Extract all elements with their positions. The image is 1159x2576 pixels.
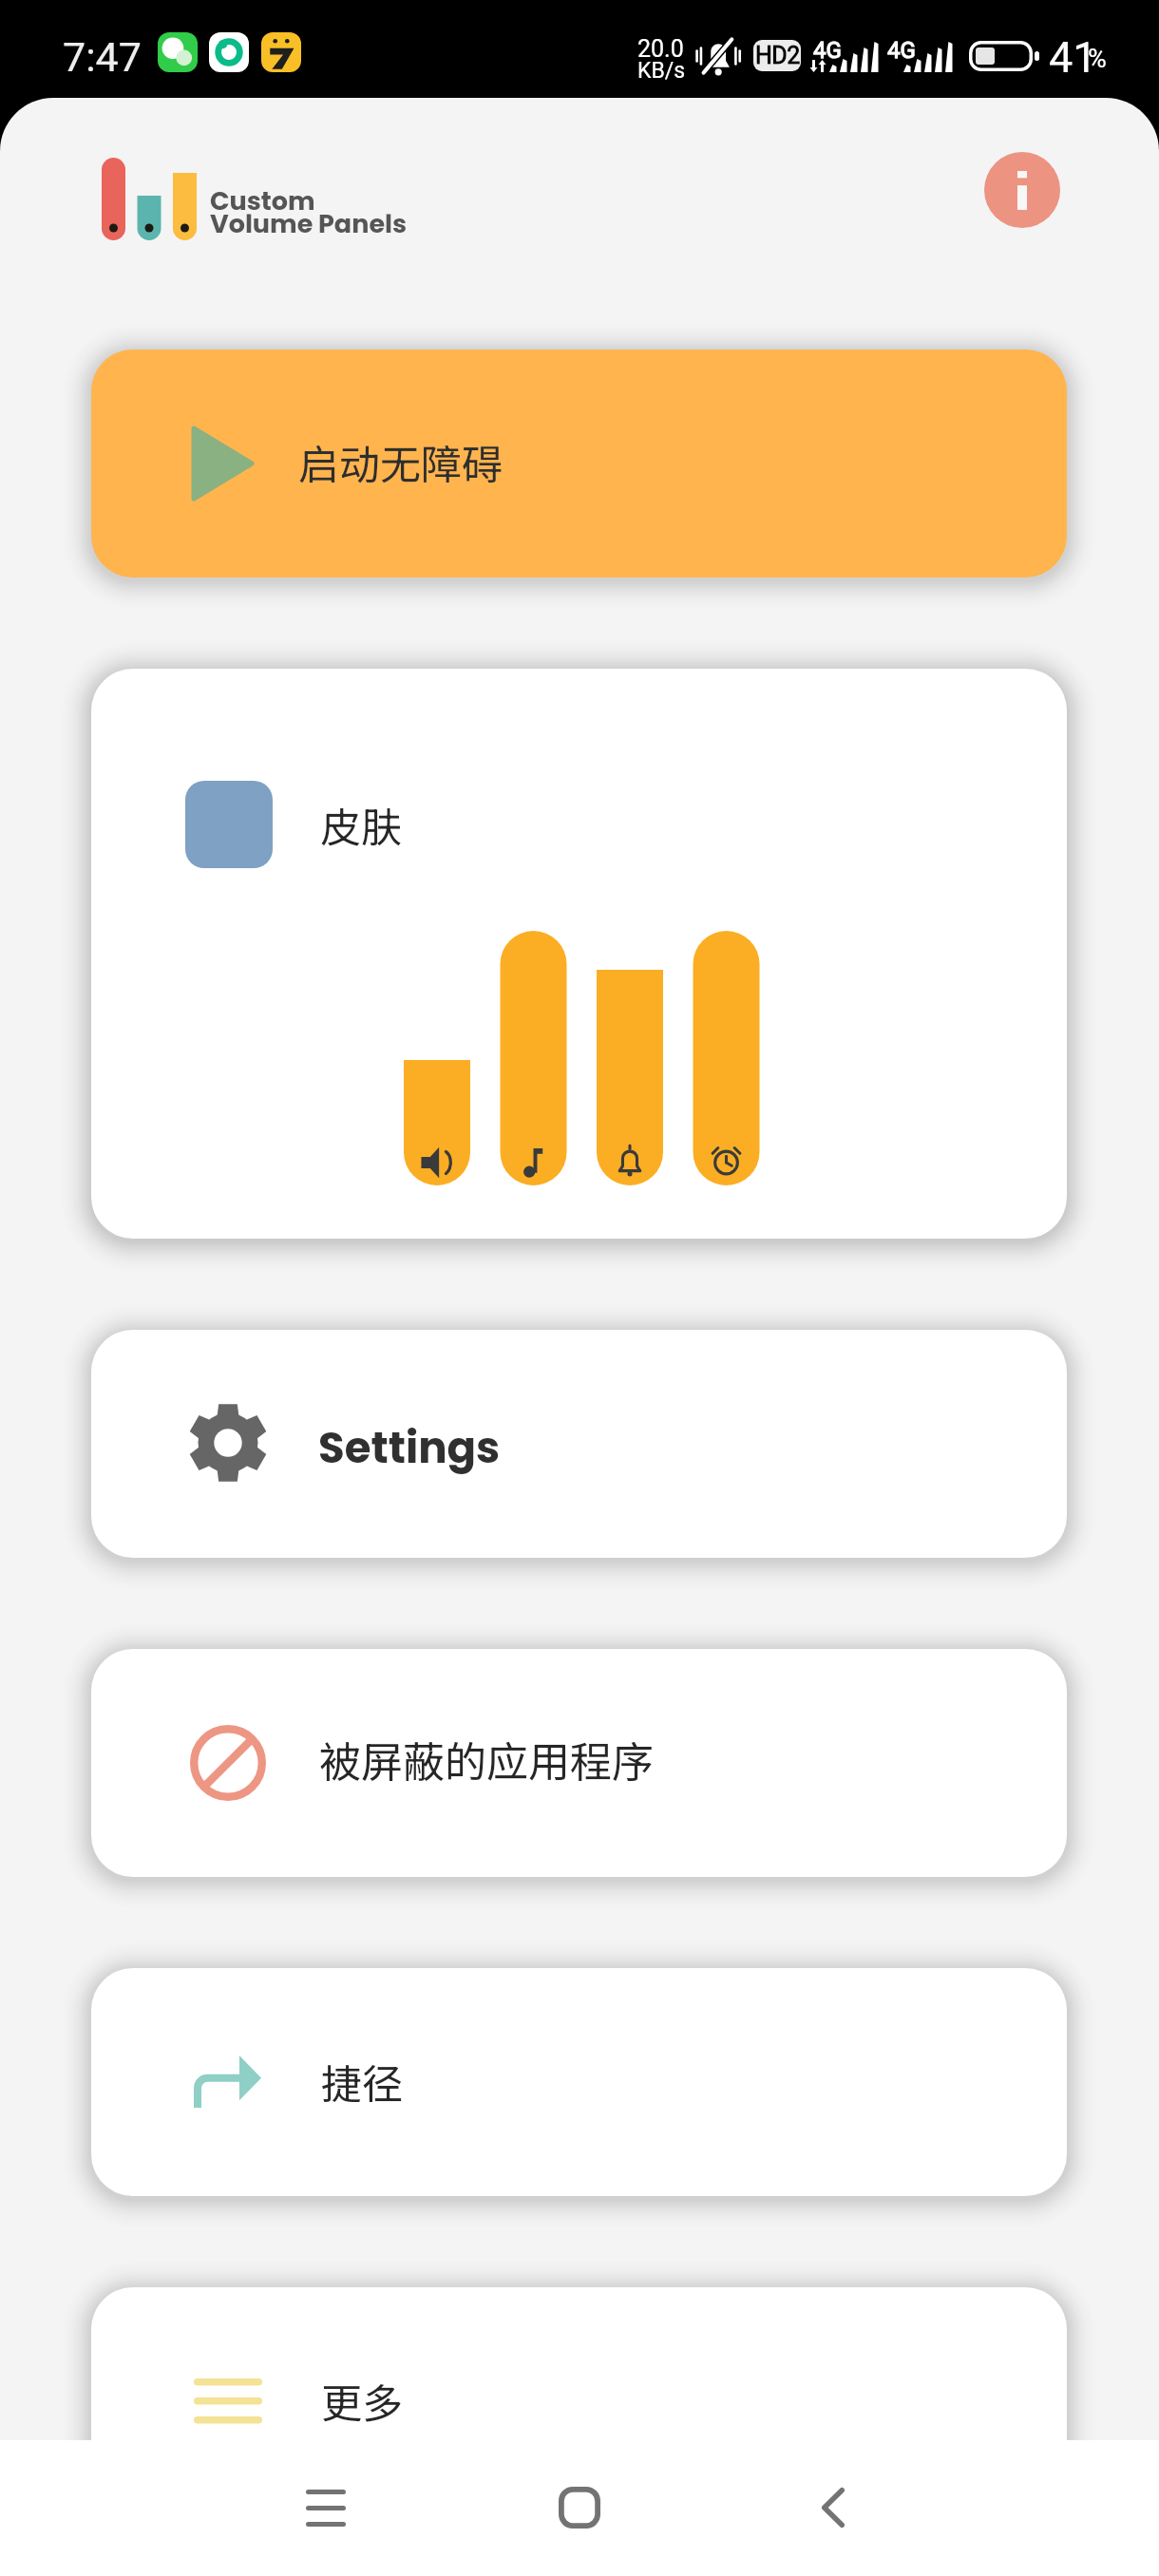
button[interactable]: Home	[522, 2451, 636, 2565]
staticText: %	[1088, 44, 1107, 74]
button[interactable]: Recent apps	[269, 2451, 383, 2565]
button[interactable]: Back	[776, 2451, 890, 2565]
staticText: 更多	[321, 2371, 403, 2430]
staticText: Volume Panels	[210, 206, 408, 242]
button[interactable]: 皮肤	[91, 669, 1067, 1239]
staticText: 20.0	[637, 35, 684, 63]
button[interactable]: Settings	[91, 1330, 1067, 1558]
staticText: Settings	[318, 1418, 501, 1478]
staticText: KB/s	[637, 58, 686, 84]
staticText: 41	[1049, 32, 1097, 83]
button[interactable]: 被屏蔽的应用程序	[91, 1649, 1067, 1877]
button[interactable]: Info	[970, 138, 1074, 242]
staticText: 被屏蔽的应用程序	[319, 1729, 654, 1790]
staticText: HD2	[755, 42, 800, 69]
button[interactable]: 更多	[91, 2287, 1067, 2440]
staticText: 4G	[887, 37, 916, 64]
staticText: 4G	[813, 37, 842, 64]
staticText: 皮肤	[320, 795, 402, 854]
button[interactable]: 捷径	[91, 1968, 1067, 2196]
staticText: 7:47	[63, 33, 142, 81]
staticText: 启动无障碍	[298, 432, 503, 491]
staticText: Custom	[210, 183, 315, 219]
button[interactable]: 启动无障碍	[91, 350, 1067, 578]
staticText: 捷径	[321, 2052, 403, 2111]
